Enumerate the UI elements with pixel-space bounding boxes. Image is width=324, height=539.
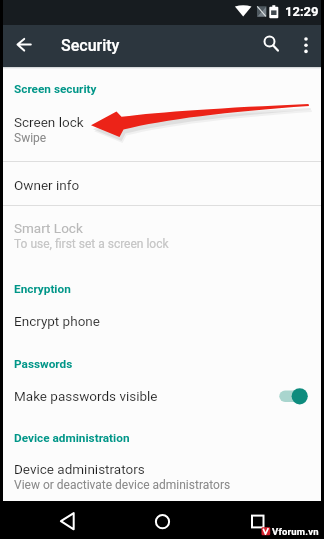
staticText: Owner info bbox=[14, 177, 80, 193]
button[interactable] bbox=[0, 375, 324, 421]
button[interactable] bbox=[0, 162, 324, 205]
staticText: Device administration bbox=[14, 431, 130, 445]
staticText: 12:29 bbox=[285, 4, 319, 19]
button[interactable] bbox=[0, 25, 46, 67]
button[interactable] bbox=[0, 301, 324, 345]
button[interactable] bbox=[253, 25, 288, 67]
button[interactable] bbox=[288, 25, 324, 67]
staticText: Encryption bbox=[14, 282, 71, 296]
staticText: Screen security bbox=[14, 82, 97, 96]
staticText: Device administrators bbox=[14, 461, 145, 477]
staticText: Screen lock bbox=[14, 114, 84, 130]
staticText: Swipe bbox=[14, 131, 47, 145]
button[interactable] bbox=[40, 501, 92, 539]
button[interactable] bbox=[136, 501, 188, 539]
button[interactable] bbox=[275, 383, 311, 409]
button[interactable] bbox=[0, 448, 324, 501]
staticText: Encrypt phone bbox=[14, 313, 100, 329]
staticText: Smart Lock bbox=[14, 220, 83, 236]
staticText: Passwords bbox=[14, 357, 73, 371]
staticText: Security bbox=[61, 36, 120, 55]
button[interactable] bbox=[0, 206, 324, 263]
staticText: To use, first set a screen lock bbox=[14, 237, 169, 251]
staticText: View or deactivate device administrators bbox=[14, 478, 231, 492]
button[interactable] bbox=[228, 501, 280, 539]
staticText: Vforum.vn bbox=[272, 526, 319, 537]
button[interactable] bbox=[0, 102, 324, 161]
staticText: Make passwords visible bbox=[14, 388, 158, 404]
